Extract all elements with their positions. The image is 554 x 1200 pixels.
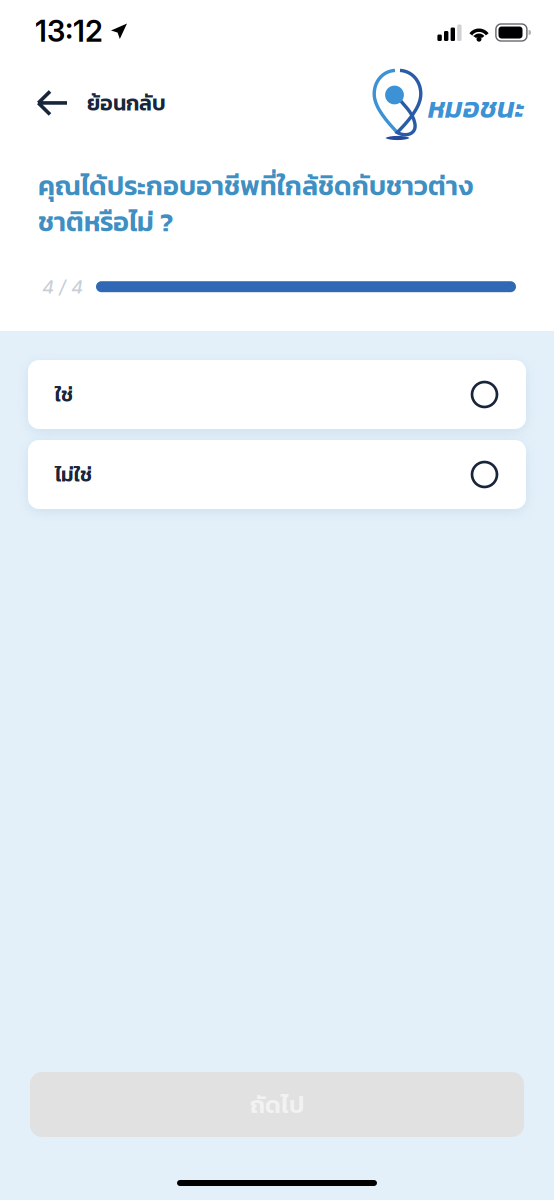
staticText: คุณได้ประกอบอาชีพที่ใกล้ชิดกับชาวต่าง — [38, 166, 473, 206]
staticText: 13:12 — [35, 13, 103, 49]
staticText: ไม่ใช่ — [55, 459, 92, 489]
staticText: ย้อนกลับ — [87, 87, 166, 119]
button[interactable]: ใช่ — [28, 360, 526, 429]
staticText: หมอชนะ — [428, 87, 524, 129]
staticText: 4 / 4 — [42, 275, 83, 298]
staticText: ถัดไป — [250, 1087, 304, 1122]
button[interactable]: ไม่ใช่ — [28, 440, 526, 509]
staticText: ชาติหรือไม่ ? — [38, 202, 173, 242]
button[interactable]: ย้อนกลับ — [36, 66, 166, 119]
staticText: ใช่ — [55, 379, 73, 409]
